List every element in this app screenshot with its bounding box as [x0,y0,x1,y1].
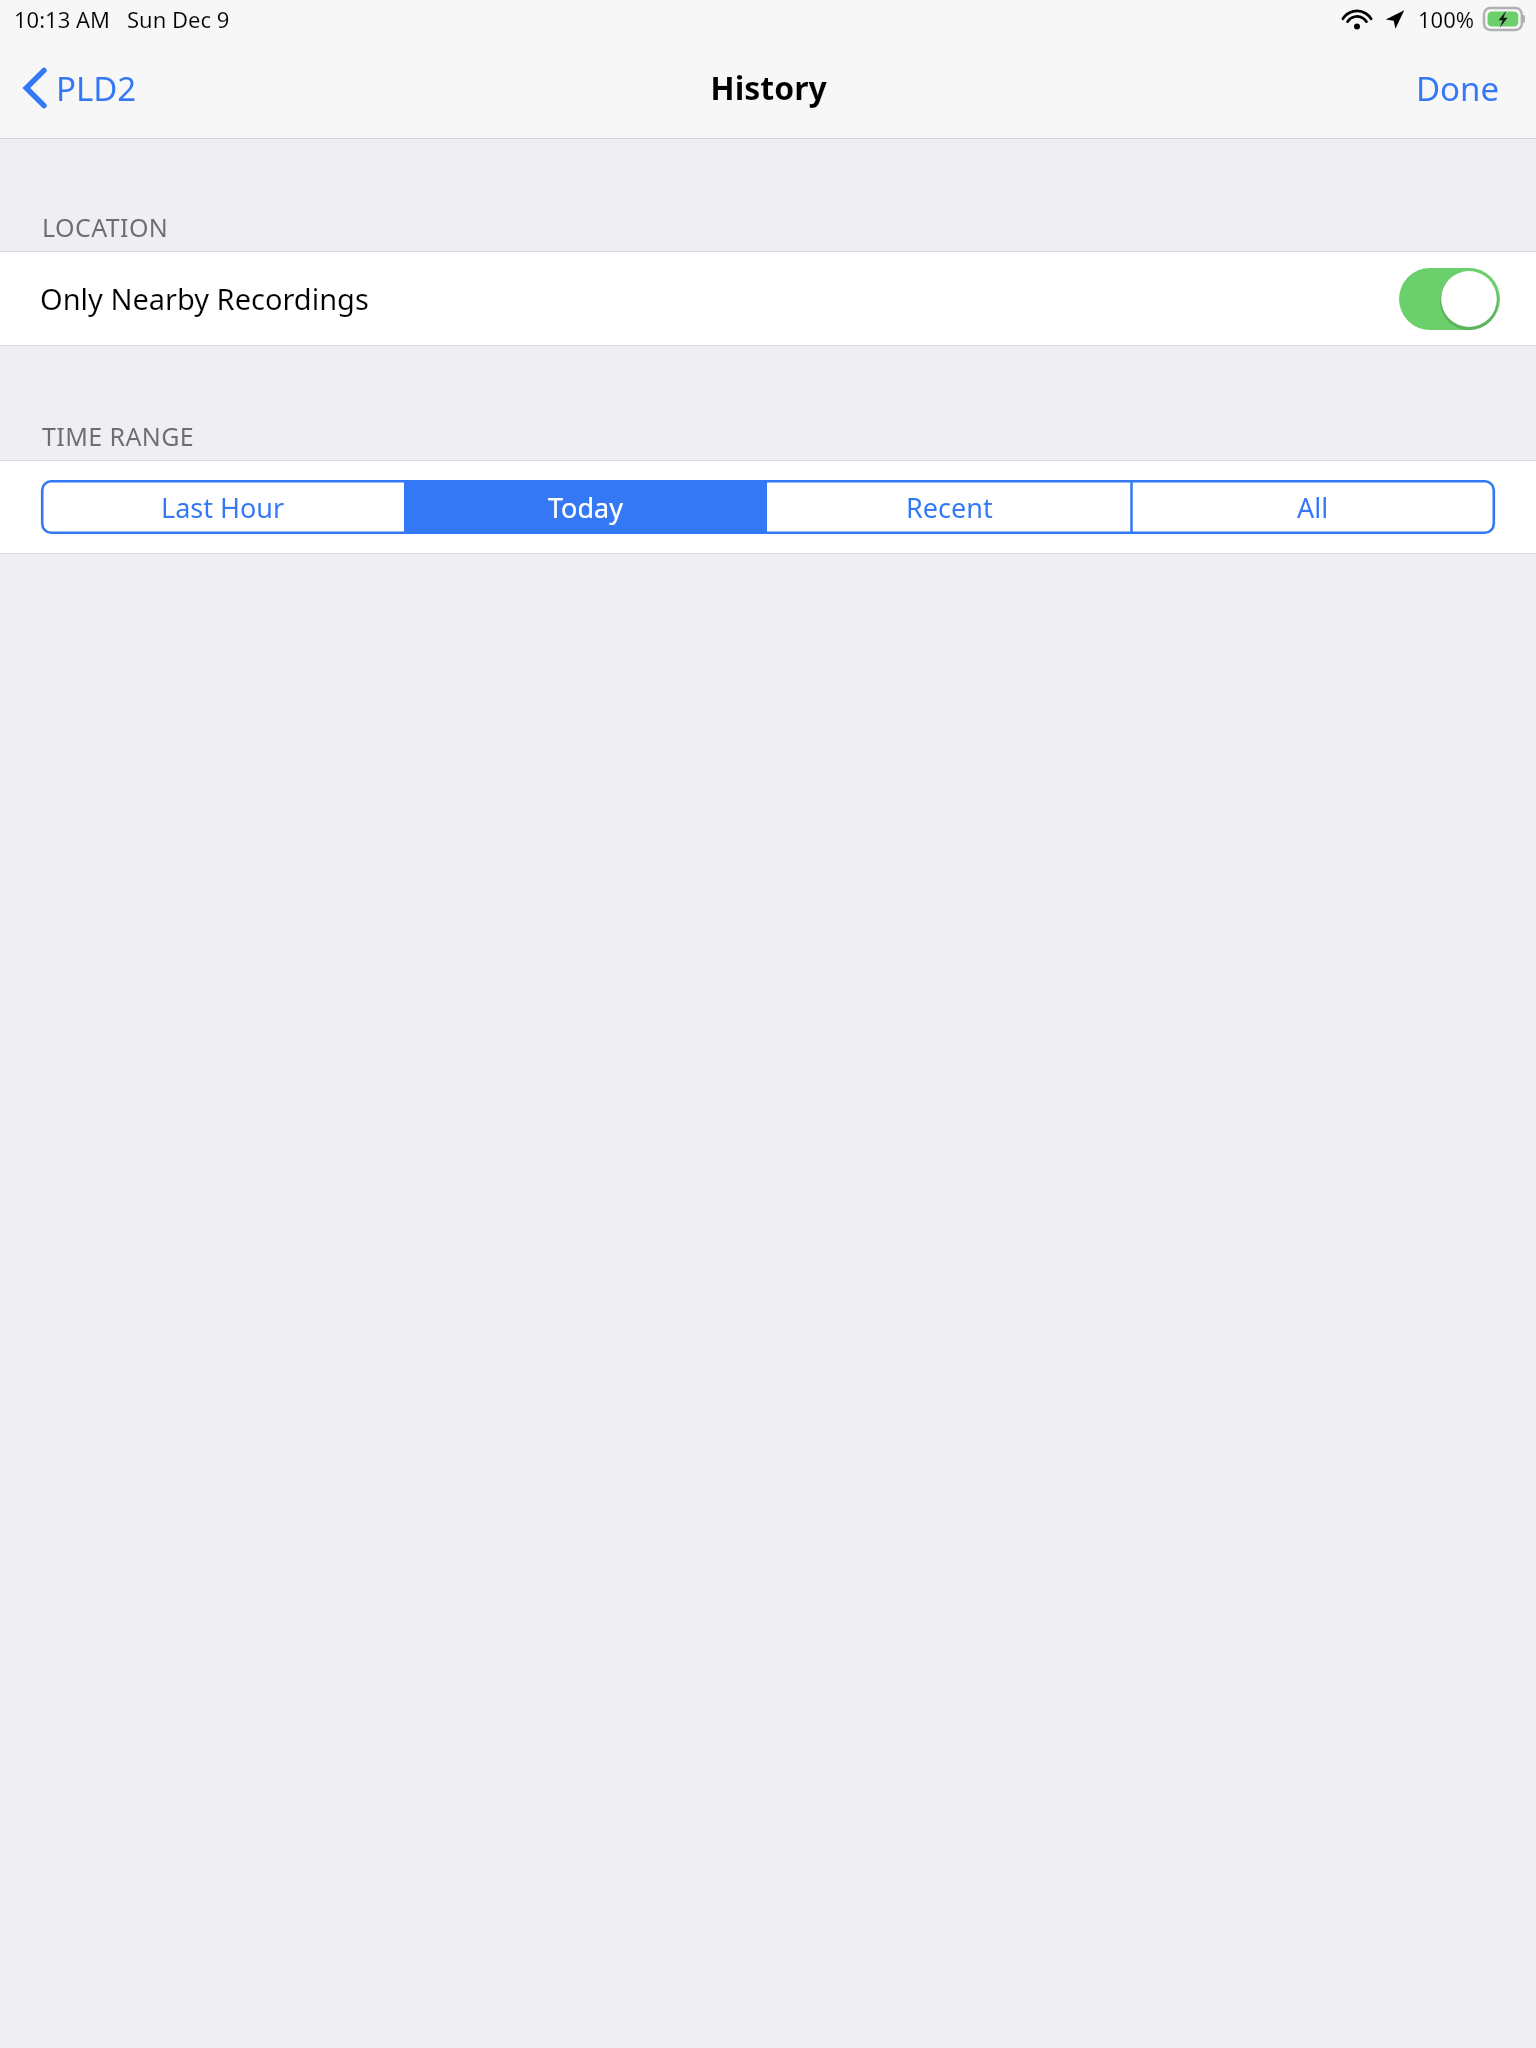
staticText: Recent [906,489,993,526]
button[interactable]: Only Nearby Recordings [0,252,1536,345]
button[interactable]: All [1131,480,1495,534]
staticText: TIME RANGE [42,419,195,453]
staticText: Last Hour [161,489,285,526]
staticText: LOCATION [42,210,169,244]
staticText: PLD2 [56,66,137,111]
button[interactable]: Recent [767,480,1131,534]
button[interactable]: Only Nearby Recordings toggle, on [1399,268,1500,330]
staticText: Sun Dec 9 [127,4,230,34]
button[interactable]: Today [404,480,767,534]
staticText: Only Nearby Recordings [40,279,369,318]
button[interactable]: Last Hour [41,480,404,534]
staticText: All [1297,489,1329,526]
button[interactable]: PLD2 [0,37,153,139]
staticText: Today [548,489,623,526]
staticText: 100% [1418,4,1475,34]
staticText: 10:13 AM [14,4,110,34]
button[interactable]: Done [1380,37,1536,139]
staticText: History [710,66,827,110]
staticText: Done [1416,66,1500,111]
